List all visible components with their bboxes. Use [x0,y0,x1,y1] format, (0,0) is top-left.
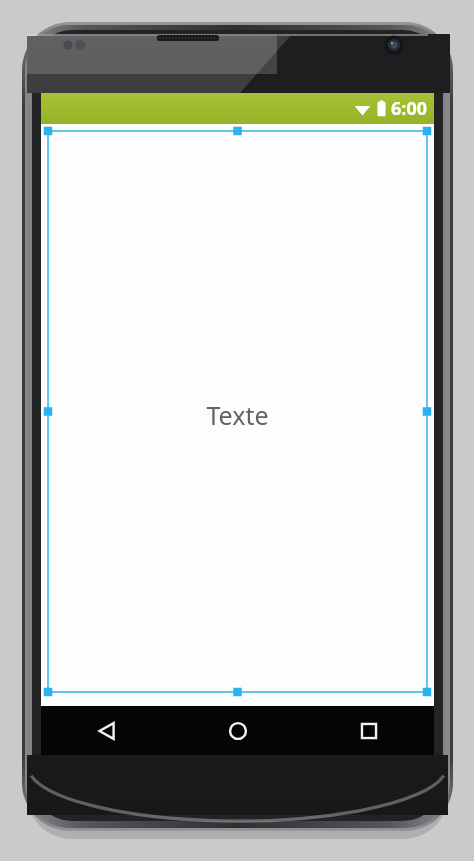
staticText: Texte [206,398,269,432]
button[interactable]: Recent apps [303,706,434,755]
button[interactable]: Back [41,706,172,755]
staticText: 6:00 [391,96,427,121]
button[interactable]: Texte [206,398,269,432]
button[interactable]: Home [172,706,303,755]
